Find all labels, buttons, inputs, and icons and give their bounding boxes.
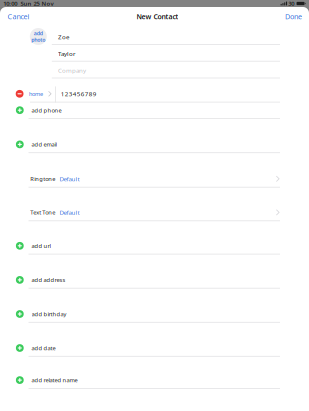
button[interactable]: add date — [0, 340, 309, 357]
staticText: New Contact — [136, 12, 178, 21]
staticText: 30 — [288, 0, 294, 7]
button[interactable]: add address — [0, 272, 309, 289]
staticText: add phone — [32, 106, 62, 114]
staticText: Text Tone — [30, 208, 55, 216]
button[interactable]: Ringtone — [0, 171, 309, 188]
staticText: photo — [31, 36, 45, 43]
button[interactable]: Company — [52, 62, 280, 78]
staticText: add url — [32, 242, 51, 250]
button[interactable]: add phone — [0, 102, 309, 119]
button[interactable]: Taylor — [52, 45, 280, 62]
staticText: 10:00 — [3, 0, 17, 7]
staticText: add birthday — [32, 310, 67, 318]
staticText: Default — [59, 208, 79, 217]
staticText: add email — [32, 140, 57, 148]
staticText: Zoe — [58, 33, 69, 41]
staticText: 123456789 — [61, 90, 97, 98]
button[interactable]: Text Tone — [0, 205, 309, 221]
staticText: add date — [32, 344, 56, 352]
button[interactable]: add email — [0, 137, 309, 153]
staticText: home — [29, 90, 43, 98]
button[interactable]: Add photo — [30, 28, 47, 45]
staticText: add address — [32, 276, 66, 284]
button[interactable]: home — [0, 86, 309, 102]
button[interactable]: add related name — [0, 372, 309, 389]
button[interactable]: Zoe — [52, 28, 280, 45]
button[interactable]: add birthday — [0, 306, 309, 323]
staticText: Ringtone — [30, 175, 55, 183]
staticText: Default — [59, 175, 79, 183]
staticText: add — [34, 30, 43, 37]
button[interactable]: Cancel — [0, 8, 37, 25]
button[interactable]: Done — [278, 8, 309, 25]
staticText: Taylor — [58, 49, 76, 58]
button[interactable]: add url — [0, 238, 309, 254]
staticText: Cancel — [7, 12, 29, 21]
staticText: Company — [58, 66, 86, 75]
staticText: add related name — [32, 376, 78, 384]
staticText: Done — [285, 12, 302, 21]
staticText: Sun 25 Nov — [21, 0, 54, 7]
